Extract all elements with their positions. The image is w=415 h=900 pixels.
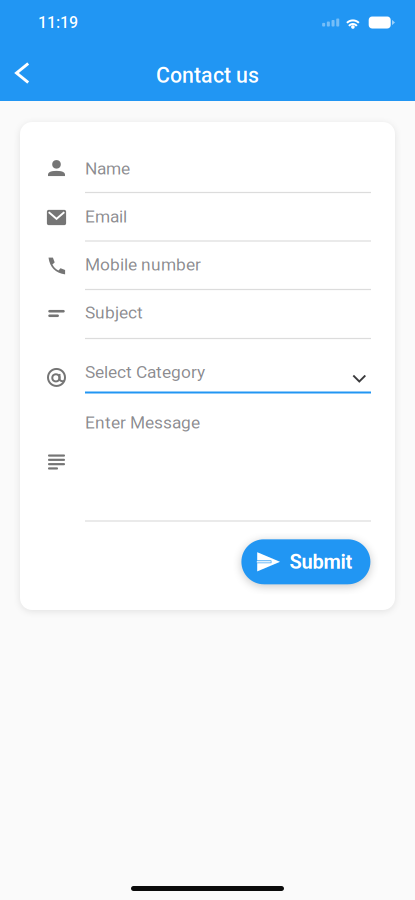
staticText: Mobile number: [85, 254, 201, 275]
button[interactable]: Back: [0, 50, 44, 96]
staticText: Submit: [289, 550, 352, 573]
staticText: Email: [85, 206, 127, 227]
staticText: Enter Message: [85, 412, 200, 433]
staticText: Select Category: [85, 362, 205, 382]
staticText: Subject: [85, 302, 143, 323]
staticText: 11:19: [38, 13, 78, 32]
button[interactable]: Submit: [241, 539, 370, 584]
staticText: Name: [85, 158, 130, 179]
staticText: Contact us: [156, 63, 259, 88]
button[interactable]: Select Category: [20, 346, 369, 396]
